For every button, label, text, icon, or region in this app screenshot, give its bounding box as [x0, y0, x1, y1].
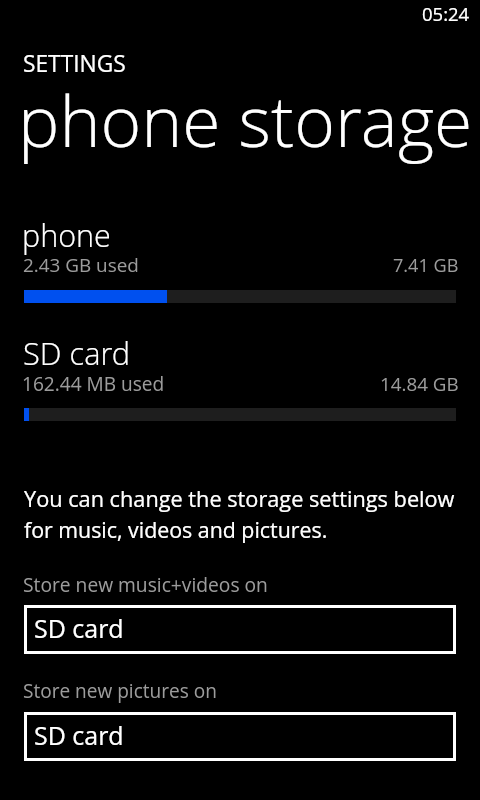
staticText: phone: [22, 214, 111, 256]
button[interactable]: SD card 162.44 MB used of 14.84 GB: [0, 332, 480, 422]
staticText: SETTINGS: [23, 48, 126, 79]
staticText: phone storage: [18, 73, 473, 168]
staticText: Store new pictures on: [23, 678, 217, 704]
staticText: SD card: [34, 718, 124, 752]
button[interactable]: Store new pictures on SD card: [24, 712, 456, 761]
button[interactable]: Store new music and videos on SD card: [24, 605, 456, 654]
staticText: SD card: [34, 611, 124, 645]
staticText: SD card: [23, 332, 131, 374]
staticText: You can change the storage settings belo…: [24, 484, 455, 514]
staticText: 162.44 MB used: [22, 371, 165, 397]
staticText: for music, videos and pictures.: [24, 515, 328, 544]
staticText: 05:24: [422, 1, 470, 26]
staticText: 7.41 GB: [393, 253, 459, 278]
button[interactable]: SETTINGS phone storage: [0, 44, 480, 174]
staticText: 2.43 GB used: [23, 252, 139, 278]
button[interactable]: phone 2.43 GB used of 7.41 GB: [0, 214, 480, 304]
staticText: Store new music+videos on: [23, 571, 268, 597]
staticText: 14.84 GB: [380, 371, 459, 397]
